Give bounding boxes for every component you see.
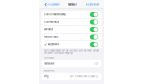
staticText: Mit freundlichen Grüßen xyxy=(70,75,95,78)
staticText: Auto-Korrektur xyxy=(44,21,59,23)
staticText: Durch Doppeltippen auf die Leertaste wir… xyxy=(44,49,99,54)
staticText: 3 xyxy=(94,62,95,65)
button[interactable]: Auto-Großschreibung xyxy=(41,11,102,18)
button[interactable]: Allgemein xyxy=(39,3,59,6)
button[interactable]: Kurzbefehle xyxy=(41,41,102,48)
staticText: Tastatur xyxy=(68,3,77,6)
staticText: KURZBEFEHLE xyxy=(44,70,55,72)
staticText: Korrektur xyxy=(44,28,53,31)
staticText: Tastaturen xyxy=(44,62,54,65)
button[interactable]: Auto-Korrektur xyxy=(41,18,102,26)
staticText: Feststelltaste xyxy=(44,36,58,38)
button[interactable]: mfg xyxy=(41,73,102,80)
button[interactable]: Bearbeiten xyxy=(86,3,104,6)
staticText: Auto-Großschreibung xyxy=(44,13,65,16)
staticText: mfg xyxy=(44,75,48,78)
staticText: TASTATUREN xyxy=(44,57,55,59)
button[interactable]: Feststelltaste xyxy=(41,33,102,41)
staticText: Allgemein xyxy=(47,3,59,6)
button[interactable]: Tastaturen xyxy=(41,60,102,67)
button[interactable]: Korrektur xyxy=(41,26,102,33)
staticText: Kurzbefehle xyxy=(48,43,59,46)
staticText: Bearbeiten xyxy=(86,3,99,6)
